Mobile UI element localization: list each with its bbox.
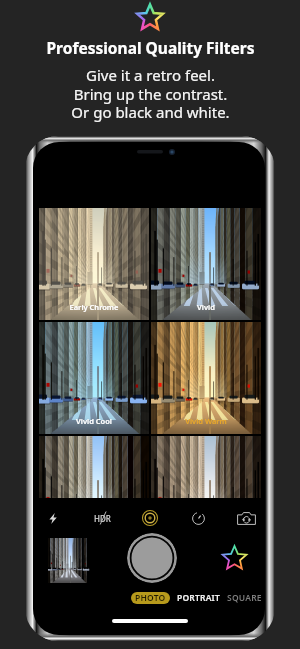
staticText: Vivid Cool [39,416,149,426]
staticText: SQUARE [227,592,262,604]
button[interactable]: Switch Camera [231,505,261,531]
button[interactable]: Timer [183,505,213,531]
button[interactable]: Shutter [127,533,177,583]
staticText: Professional Quality Filters [46,37,255,58]
staticText: Give it a retro feel. Bring up the contr… [71,65,230,122]
staticText: Early Chrome [39,302,149,312]
button[interactable]: SQUARE [225,592,263,604]
staticText: Vivid [151,302,261,312]
button[interactable]: Flash [38,505,68,531]
button[interactable]: PHOTO [131,592,170,604]
staticText: Vivid Warm [151,416,261,426]
staticText: PORTRAIT [177,592,220,604]
staticText: PHOTO [135,592,166,604]
button[interactable]: PORTRAIT [176,592,220,604]
button[interactable]: HDR [87,505,117,531]
button[interactable]: Last photo [48,538,90,583]
button[interactable]: Live Photo [135,505,165,531]
button[interactable]: Filters [221,545,248,572]
staticText: HDR [94,513,111,524]
